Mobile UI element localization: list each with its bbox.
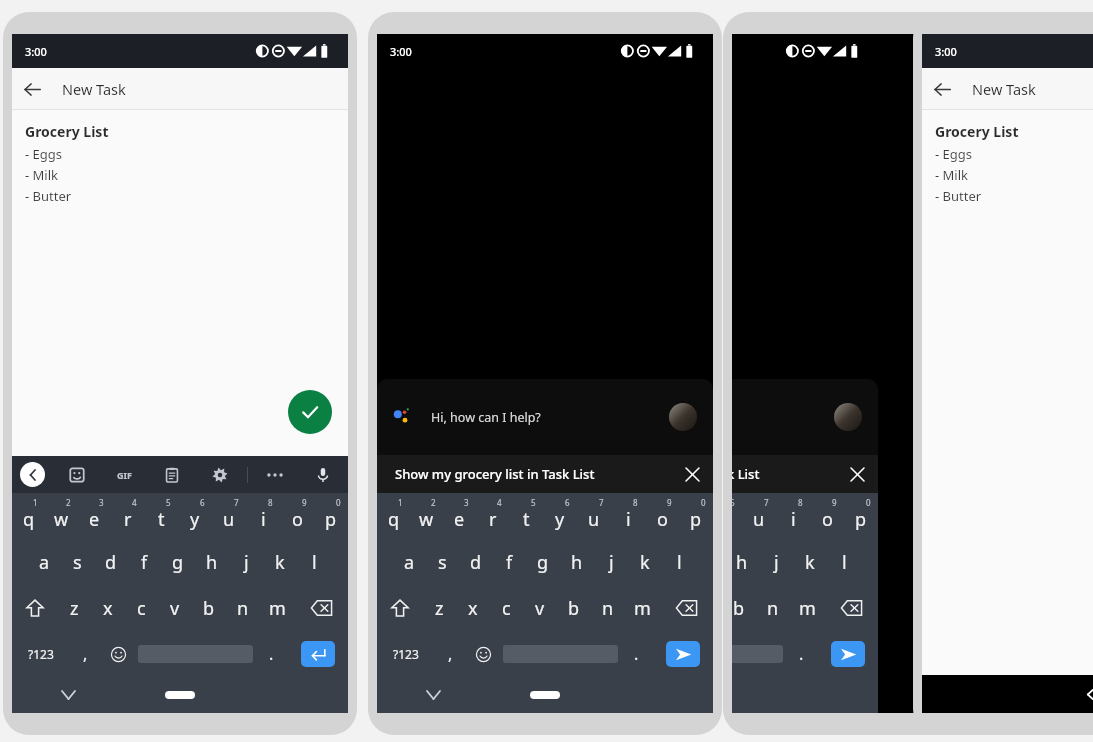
button[interactable]: 4 (111, 493, 144, 539)
button[interactable]: , (434, 631, 467, 677)
button[interactable]: Stickers (62, 460, 92, 490)
button[interactable]: Save task (288, 390, 332, 434)
button[interactable]: Account (669, 403, 697, 431)
button[interactable]: k (628, 539, 662, 585)
button[interactable]: a (393, 539, 426, 585)
button[interactable]: Voice input (308, 460, 338, 490)
button[interactable]: v (523, 585, 557, 631)
button[interactable]: h (560, 539, 594, 585)
button[interactable]: GIF (109, 460, 139, 490)
button[interactable]: Shift (12, 585, 58, 631)
button[interactable]: . (255, 631, 288, 677)
button[interactable]: 1 (12, 493, 45, 539)
button[interactable]: g (161, 539, 195, 585)
button[interactable]: Hide keyboard (377, 677, 489, 713)
button[interactable]: s (61, 539, 94, 585)
button[interactable]: b (192, 585, 226, 631)
button[interactable]: 2 (410, 493, 443, 539)
button[interactable]: d (459, 539, 492, 585)
button[interactable]: f (492, 539, 526, 585)
button[interactable]: 7 (212, 493, 246, 539)
button[interactable]: Enter (288, 631, 348, 677)
button[interactable]: m (260, 585, 294, 631)
button[interactable]: x (91, 585, 124, 631)
button[interactable]: Send (818, 631, 878, 677)
button[interactable]: Home (489, 677, 601, 713)
button[interactable]: 3 (443, 493, 476, 539)
button[interactable]: Clipboard (157, 460, 187, 490)
button[interactable]: 5 (144, 493, 178, 539)
button[interactable]: ?123 (377, 631, 434, 677)
button[interactable]: 3 (78, 493, 111, 539)
button[interactable]: b (557, 585, 591, 631)
button[interactable]: Backspace (294, 585, 348, 631)
button[interactable]: Account (834, 403, 862, 431)
button[interactable]: l (827, 539, 861, 585)
button[interactable]: x (456, 585, 489, 631)
button[interactable]: f (127, 539, 161, 585)
button[interactable]: 7 (742, 493, 776, 539)
button[interactable]: Emoji (467, 631, 500, 677)
button[interactable]: Previous (20, 462, 45, 487)
button[interactable]: 8 (776, 493, 810, 539)
button[interactable]: 9 (810, 493, 844, 539)
button[interactable]: 8 (611, 493, 645, 539)
button[interactable]: Send (653, 631, 713, 677)
button[interactable]: 8 (246, 493, 280, 539)
button[interactable]: , (69, 631, 102, 677)
button[interactable]: Space (732, 631, 785, 677)
button[interactable]: 5 (509, 493, 543, 539)
button[interactable]: j (229, 539, 263, 585)
button[interactable]: Back (1070, 675, 1093, 713)
button[interactable]: v (158, 585, 192, 631)
button[interactable]: 0 (679, 493, 713, 539)
button[interactable]: h (195, 539, 229, 585)
button[interactable]: 1 (377, 493, 410, 539)
button[interactable]: ?123 (12, 631, 69, 677)
button[interactable]: . (620, 631, 653, 677)
button[interactable]: 0 (844, 493, 878, 539)
button[interactable]: 0 (314, 493, 348, 539)
button[interactable]: Settings (205, 460, 235, 490)
button[interactable]: j (594, 539, 628, 585)
button[interactable]: j (759, 539, 793, 585)
button[interactable]: 9 (645, 493, 679, 539)
button[interactable]: h (732, 539, 759, 585)
button[interactable]: 6 (178, 493, 212, 539)
button[interactable]: k (263, 539, 297, 585)
button[interactable]: Hide keyboard (12, 677, 124, 713)
button[interactable]: More (260, 460, 290, 490)
button[interactable]: 4 (476, 493, 509, 539)
button[interactable]: b (732, 585, 756, 631)
button[interactable]: 6 (543, 493, 577, 539)
button[interactable]: Back (922, 69, 962, 109)
button[interactable]: Emoji (102, 631, 135, 677)
button[interactable]: g (526, 539, 560, 585)
button[interactable]: z (58, 585, 91, 631)
button[interactable]: Backspace (824, 585, 878, 631)
button[interactable]: Back (12, 69, 52, 109)
button[interactable]: Backspace (659, 585, 713, 631)
button[interactable]: l (297, 539, 331, 585)
button[interactable]: n (226, 585, 260, 631)
button[interactable]: 7 (577, 493, 611, 539)
button[interactable]: s (426, 539, 459, 585)
button[interactable]: k (793, 539, 827, 585)
button[interactable]: Space (500, 631, 620, 677)
button[interactable]: n (591, 585, 625, 631)
button[interactable]: 2 (45, 493, 78, 539)
button[interactable]: . (785, 631, 818, 677)
button[interactable]: z (423, 585, 456, 631)
button[interactable]: Space (135, 631, 255, 677)
button[interactable]: Home (124, 677, 236, 713)
button[interactable]: d (94, 539, 127, 585)
button[interactable]: c (489, 585, 523, 631)
button[interactable]: l (662, 539, 696, 585)
button[interactable]: n (756, 585, 790, 631)
button[interactable]: 6 (732, 493, 742, 539)
button[interactable]: Shift (377, 585, 423, 631)
button[interactable]: Close (675, 457, 709, 491)
button[interactable]: a (28, 539, 61, 585)
button[interactable]: m (625, 585, 659, 631)
